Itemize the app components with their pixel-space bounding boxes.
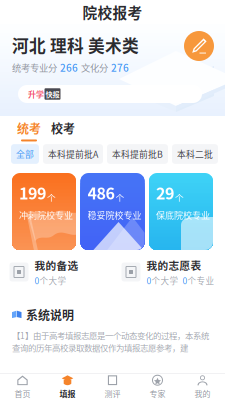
staticText: 个	[47, 192, 56, 204]
staticText: 我的志愿表	[146, 257, 201, 273]
staticText: 校考	[51, 120, 75, 137]
button[interactable]: 统考	[16, 120, 42, 141]
staticText: 文化分	[81, 61, 108, 74]
staticText: 个大学	[39, 274, 66, 287]
button[interactable]: 专家	[135, 374, 180, 400]
staticText: 个	[115, 192, 124, 204]
staticText: 276	[111, 60, 129, 75]
button[interactable]: 我的备选	[0, 253, 112, 291]
staticText: 专家	[149, 388, 165, 399]
staticText: 本科提前批B	[112, 148, 163, 160]
button[interactable]: 升学	[18, 85, 202, 103]
staticText: 0	[34, 274, 39, 287]
button[interactable]: 本科提前批B	[107, 144, 168, 164]
staticText: 我的备选	[34, 257, 78, 273]
staticText: 院校报考	[82, 1, 142, 23]
staticText: 稳妥院校专业	[87, 208, 141, 221]
staticText: 快报	[45, 89, 59, 99]
button[interactable]: 编辑资料	[184, 31, 214, 61]
button[interactable]: 校考	[50, 120, 76, 141]
staticText: 我的	[194, 388, 210, 399]
staticText: 首页	[14, 388, 30, 399]
button[interactable]: 29	[149, 173, 213, 250]
staticText: 个大学	[151, 274, 178, 287]
button[interactable]: 首页	[0, 374, 45, 400]
staticText: 全部	[16, 148, 34, 160]
staticText: 0	[146, 274, 151, 287]
staticText: 河北 理科 美术类	[12, 33, 139, 57]
staticText: 统考	[17, 120, 41, 137]
staticText: 【1】由于高考填报志愿是一个动态变化的过程，本系统查询的历年高校录取数据仅作为填…	[12, 329, 209, 354]
button[interactable]: 我的志愿表	[112, 253, 224, 291]
staticText: 199	[19, 181, 46, 204]
staticText: 升学	[28, 88, 44, 100]
staticText: 29	[156, 181, 174, 204]
button[interactable]: 填报	[45, 374, 90, 400]
button[interactable]: 本科二批	[172, 144, 218, 164]
staticText: 统考专业分	[12, 61, 57, 74]
button[interactable]: 我的	[180, 374, 225, 400]
staticText: 系统说明	[26, 306, 74, 323]
staticText: 266	[60, 60, 78, 75]
staticText: 冲刺院校专业	[19, 208, 73, 221]
button[interactable]: 199	[12, 173, 76, 250]
staticText: 0	[182, 274, 187, 287]
staticText: 测评	[104, 388, 120, 399]
staticText: 个	[175, 192, 184, 204]
staticText: 本科提前批A	[48, 148, 98, 160]
button[interactable]: 本科提前批A	[43, 144, 103, 164]
button[interactable]: 全部	[11, 144, 39, 164]
staticText: 个专业	[187, 274, 214, 287]
button[interactable]: 486	[80, 173, 144, 250]
button[interactable]: 测评	[90, 374, 135, 400]
staticText: 保底院校专业	[156, 208, 210, 221]
staticText: 本科二批	[177, 148, 213, 160]
staticText: 486	[87, 181, 114, 204]
staticText: 填报	[59, 388, 75, 399]
